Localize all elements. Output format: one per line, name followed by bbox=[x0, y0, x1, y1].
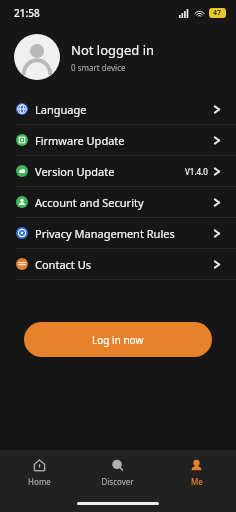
button[interactable]: Me bbox=[157, 450, 236, 494]
button[interactable]: Discover bbox=[78, 450, 157, 494]
button[interactable]: Home bbox=[0, 450, 78, 494]
button[interactable]: Firmware Update bbox=[0, 125, 236, 156]
staticText: Privacy Management Rules bbox=[35, 226, 175, 241]
staticText: Contact Us bbox=[35, 257, 91, 272]
button[interactable]: Log in now bbox=[24, 322, 212, 357]
staticText: 47 bbox=[213, 8, 222, 18]
button[interactable]: Privacy Management Rules bbox=[0, 218, 236, 249]
button[interactable]: Language bbox=[0, 94, 236, 125]
staticText: Not logged in bbox=[71, 41, 155, 59]
staticText: Language bbox=[35, 102, 87, 117]
button[interactable]: Version Update bbox=[0, 156, 236, 187]
staticText: Account and Security bbox=[35, 195, 144, 210]
staticText: 0 smart device bbox=[71, 62, 126, 73]
button[interactable]: Not logged in bbox=[0, 25, 236, 89]
button[interactable]: Account and Security bbox=[0, 187, 236, 218]
staticText: V1.4.0 bbox=[185, 166, 208, 177]
staticText: Discover bbox=[101, 476, 134, 487]
staticText: 21:58 bbox=[14, 6, 40, 20]
staticText: Log in now bbox=[92, 333, 144, 347]
staticText: Version Update bbox=[35, 164, 115, 179]
staticText: Home bbox=[28, 476, 51, 487]
button[interactable]: Contact Us bbox=[0, 249, 236, 280]
staticText: Me bbox=[191, 476, 203, 487]
staticText: Firmware Update bbox=[35, 133, 125, 148]
